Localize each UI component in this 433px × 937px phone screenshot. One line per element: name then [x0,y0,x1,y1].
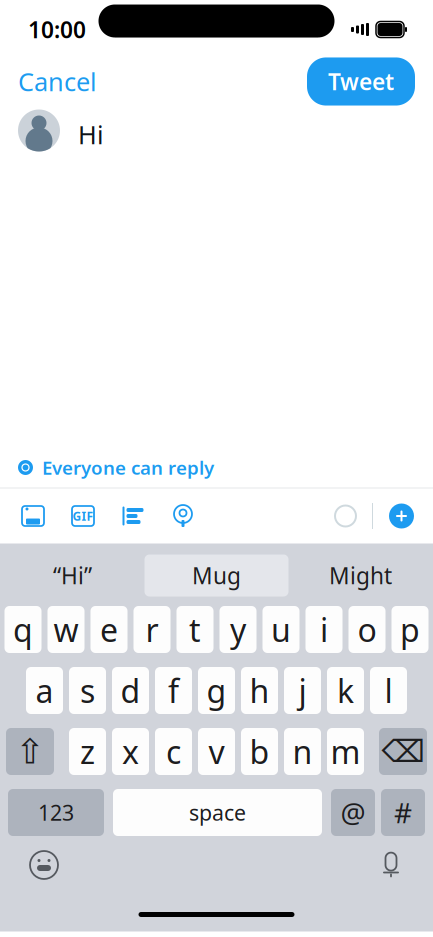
button[interactable]: @ [331,789,375,836]
staticText: 123 [38,798,74,827]
button[interactable]: Add poll [108,497,158,535]
button[interactable]: Emoji [18,839,70,891]
staticText: i [320,608,328,651]
button[interactable]: Add tweet [389,503,414,528]
button[interactable]: e [90,606,127,653]
button[interactable]: Tweet [307,57,415,105]
button[interactable]: j [284,667,321,714]
button[interactable]: l [370,667,407,714]
staticText: k [337,669,354,712]
staticText: l [384,669,392,712]
staticText: Everyone can reply [42,455,214,480]
button[interactable]: o [348,606,385,653]
staticText: e [100,608,118,651]
button[interactable]: x [112,728,149,775]
staticText: v [208,730,224,773]
button[interactable]: Might [288,554,432,596]
staticText: GIF [72,508,93,524]
staticText: n [292,730,312,773]
button[interactable]: Add GIF [58,497,108,535]
button[interactable]: # [381,789,425,836]
staticText: x [122,730,139,773]
staticText: p [400,608,420,651]
staticText: space [189,798,246,827]
button[interactable]: Mug [144,554,288,596]
staticText: m [330,730,360,773]
staticText: @ [340,794,365,831]
staticText: ⌫ [381,734,424,769]
button[interactable]: a [26,667,63,714]
button[interactable]: p [391,606,428,653]
button[interactable]: 123 [8,789,104,836]
button[interactable]: Everyone can reply [0,447,214,488]
button[interactable]: b [241,728,278,775]
staticText: Hi [78,117,104,151]
staticText: b [249,730,269,773]
staticText: c [166,730,181,773]
button[interactable]: c [155,728,192,775]
staticText: w [53,608,78,651]
staticText: s [80,669,95,712]
button[interactable]: n [284,728,321,775]
staticText: a [35,669,53,712]
staticText: o [357,608,376,651]
button[interactable]: Delete [379,728,427,775]
staticText: z [80,730,95,773]
button[interactable]: w [47,606,84,653]
button[interactable]: space [113,789,322,836]
staticText: Tweet [328,66,394,96]
button[interactable]: s [69,667,106,714]
button[interactable]: m [327,728,364,775]
staticText: 10:00 [28,14,86,44]
button[interactable]: d [112,667,149,714]
button[interactable]: t [176,606,213,653]
button[interactable]: k [327,667,364,714]
staticText: Cancel [18,65,97,98]
staticText: j [298,669,306,712]
staticText: q [13,608,33,651]
button[interactable]: g [198,667,235,714]
button[interactable]: Add location [158,496,208,536]
button[interactable]: Add photo [8,497,58,535]
staticText: f [168,669,179,712]
button[interactable]: Shift [6,728,54,775]
staticText: h [249,669,269,712]
staticText: # [394,794,412,831]
button[interactable]: Cancel [0,55,115,108]
staticText: u [271,608,291,651]
button[interactable]: f [155,667,192,714]
staticText: g [206,669,226,712]
button[interactable]: h [241,667,278,714]
staticText: t [189,608,201,651]
staticText: d [120,669,140,712]
staticText: y [230,608,246,651]
button[interactable]: r [133,606,170,653]
staticText: Mug [192,560,241,590]
staticText: Might [329,560,392,590]
staticText: “Hi” [53,560,92,590]
button[interactable]: u [262,606,299,653]
button[interactable]: “Hi” [0,554,144,596]
staticText: r [145,608,158,651]
staticText: ⇧ [15,732,44,771]
button[interactable]: v [198,728,235,775]
button[interactable]: i [305,606,342,653]
button[interactable]: y [219,606,256,653]
button[interactable]: Dictation [371,841,411,889]
button[interactable]: z [69,728,106,775]
button[interactable]: q [4,606,41,653]
